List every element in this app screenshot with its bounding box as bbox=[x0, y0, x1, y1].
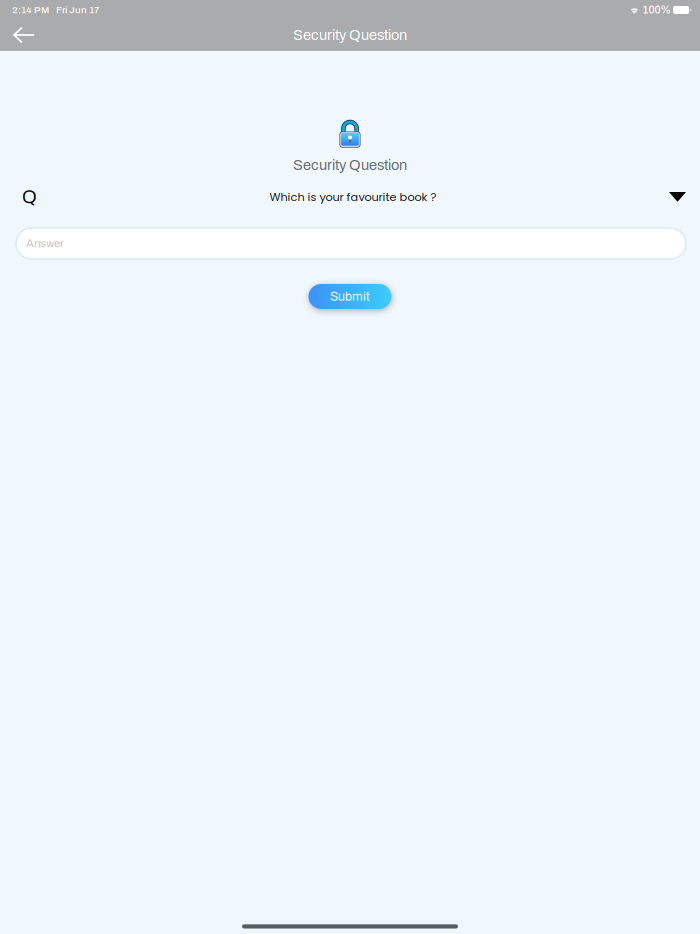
button[interactable]: Answer bbox=[16, 228, 686, 259]
button[interactable]: Choose security question bbox=[659, 184, 700, 210]
staticText: 100% bbox=[642, 4, 670, 16]
staticText: Security Question bbox=[293, 27, 407, 43]
button[interactable]: Submit bbox=[308, 284, 391, 309]
staticText: Which is your favourite book ? bbox=[269, 189, 436, 205]
staticText: 2:14 PM bbox=[12, 5, 49, 15]
staticText: Fri Jun 17 bbox=[56, 5, 100, 15]
staticText: Answer bbox=[26, 237, 64, 250]
staticText: Submit bbox=[330, 290, 370, 303]
staticText: Q bbox=[22, 187, 37, 207]
button[interactable]: Back bbox=[0, 18, 48, 52]
staticText: Security Question bbox=[293, 157, 407, 173]
